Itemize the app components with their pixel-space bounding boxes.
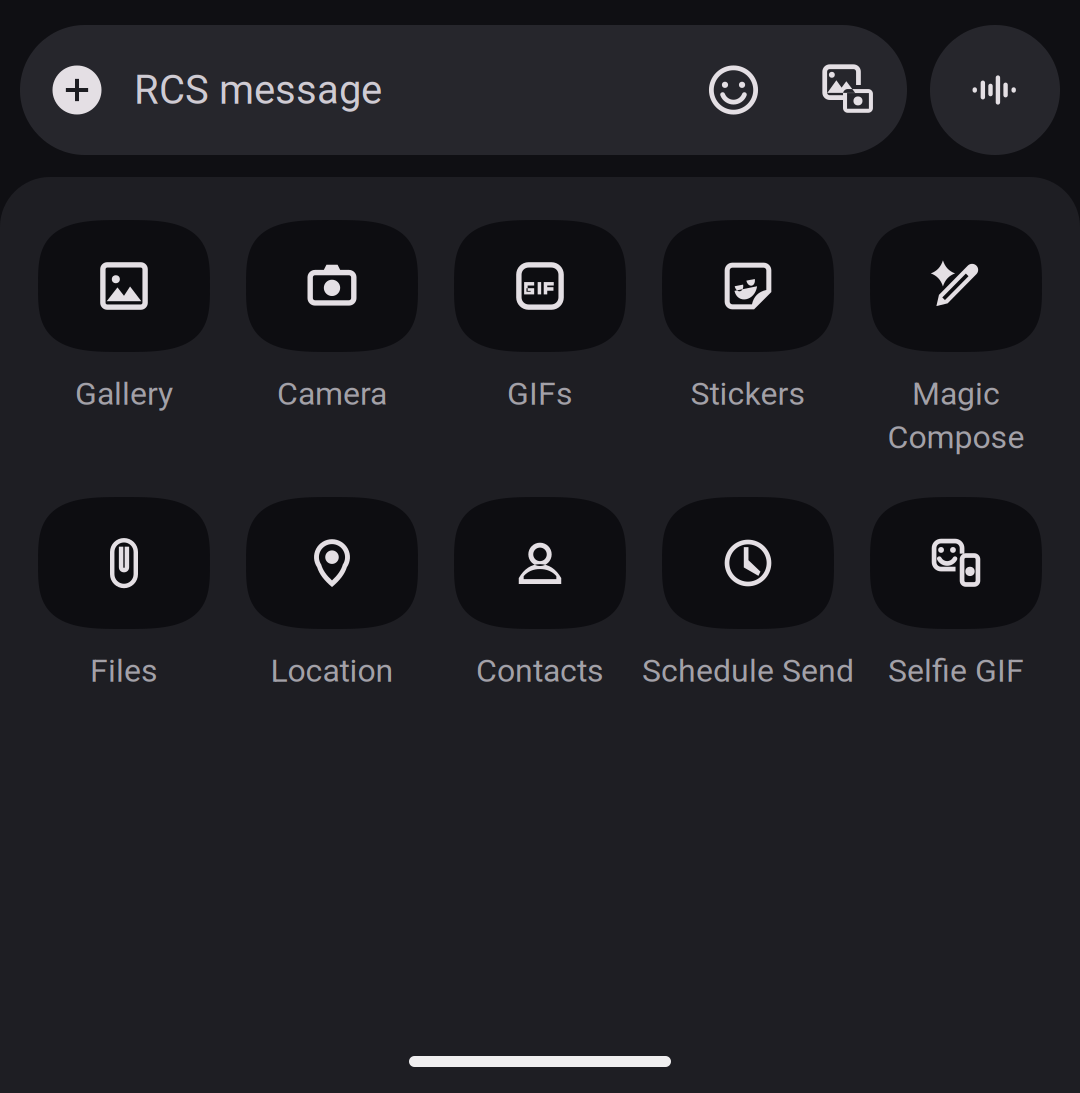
staticText: Schedule Send — [642, 652, 854, 689]
staticText: Magic — [912, 375, 1000, 412]
button[interactable]: Gallery — [38, 220, 210, 457]
staticText: Location — [270, 652, 393, 689]
staticText: Stickers — [690, 375, 805, 412]
button[interactable]: Files — [38, 497, 210, 734]
staticText: Files — [90, 652, 158, 689]
button[interactable]: Record voice message — [930, 25, 1060, 155]
button[interactable]: Choose emoji — [664, 25, 803, 155]
button[interactable]: Schedule Send — [662, 497, 834, 734]
button[interactable]: GIFs — [454, 220, 626, 457]
button[interactable]: Stickers — [662, 220, 834, 457]
button[interactable]: Magic — [870, 220, 1042, 457]
button[interactable]: Selfie GIF — [870, 497, 1042, 734]
button[interactable]: Add attachment — [20, 25, 134, 155]
staticText: Selfie GIF — [888, 652, 1024, 689]
staticText: Compose — [887, 418, 1024, 456]
staticText: RCS message — [134, 67, 382, 113]
staticText: Camera — [277, 375, 387, 412]
staticText: Gallery — [75, 375, 173, 412]
button[interactable]: Location — [246, 497, 418, 734]
button[interactable]: Open gallery — [803, 25, 893, 155]
staticText: Contacts — [476, 652, 604, 689]
button[interactable]: Contacts — [454, 497, 626, 734]
button[interactable]: Camera — [246, 220, 418, 457]
staticText: GIFs — [507, 375, 573, 412]
